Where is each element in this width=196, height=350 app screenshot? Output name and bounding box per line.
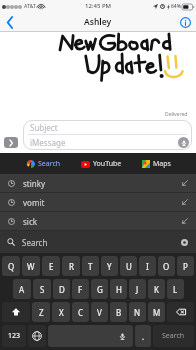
staticText: sick: [23, 216, 182, 227]
staticText: S: [40, 284, 45, 295]
staticText: Search: [22, 237, 180, 248]
staticText: vomit: [23, 197, 182, 208]
button[interactable]: Shift: [2, 302, 30, 322]
staticText: L: [173, 284, 178, 295]
button[interactable]: F: [72, 279, 89, 299]
button[interactable]: R: [62, 256, 80, 276]
button[interactable]: Search: [24, 156, 64, 172]
button[interactable]: J: [129, 279, 146, 299]
button[interactable]: Subject: [23, 120, 192, 150]
button[interactable]: L: [167, 279, 184, 299]
staticText: 123: [8, 331, 21, 341]
button[interactable]: G: [91, 279, 108, 299]
button[interactable]: U: [120, 256, 137, 276]
button[interactable]: Record audio: [178, 137, 189, 148]
staticText: A: [19, 284, 25, 295]
button[interactable]: Q: [2, 256, 20, 276]
staticText: C: [78, 307, 84, 318]
button[interactable]: T: [82, 256, 99, 276]
staticText: Y: [107, 261, 112, 272]
button[interactable]: D: [53, 279, 70, 299]
button[interactable]: Y: [101, 256, 118, 276]
staticText: T: [88, 261, 93, 272]
staticText: R: [69, 261, 74, 272]
button[interactable]: YouTube: [78, 156, 125, 172]
staticText: Search: [162, 331, 185, 341]
staticText: U: [126, 261, 132, 272]
staticText: AT&T: [24, 3, 36, 10]
button[interactable]: A: [13, 279, 31, 299]
button[interactable]: N: [129, 302, 146, 322]
button[interactable]: Apps: [4, 137, 18, 148]
staticText: V: [97, 307, 102, 318]
button[interactable]: .: [135, 325, 151, 347]
staticText: W: [27, 261, 35, 272]
staticText: O: [163, 261, 170, 272]
button[interactable]: Maps: [139, 156, 174, 172]
button[interactable]: Contact info: [178, 15, 192, 29]
staticText: X: [59, 307, 64, 318]
button[interactable]: Change keyboard language: [28, 325, 46, 347]
staticText: .: [142, 331, 145, 342]
staticText: J: [136, 284, 139, 295]
staticText: B: [116, 307, 122, 318]
staticText: YouTube: [93, 159, 122, 169]
staticText: 64%: [171, 3, 181, 10]
staticText: P: [183, 261, 188, 272]
button[interactable]: Search: [153, 325, 194, 347]
button[interactable]: S: [33, 279, 51, 299]
button[interactable]: X: [52, 302, 70, 322]
staticText: Z: [39, 307, 44, 318]
staticText: H: [116, 284, 122, 295]
staticText: K: [154, 284, 159, 295]
button[interactable]: 123: [2, 325, 26, 347]
button[interactable]: W: [22, 256, 40, 276]
button[interactable]: Clear search: [180, 238, 189, 247]
staticText: Maps: [153, 159, 171, 169]
staticText: D: [59, 284, 65, 295]
button[interactable]: B: [110, 302, 127, 322]
button[interactable]: M: [148, 302, 165, 322]
button[interactable]: H: [110, 279, 127, 299]
staticText: iMessage: [30, 137, 66, 148]
staticText: E: [49, 261, 54, 272]
staticText: 12:45 PM: [85, 2, 112, 10]
staticText: Search: [38, 159, 61, 169]
staticText: Q: [8, 261, 15, 272]
button[interactable]: V: [91, 302, 108, 322]
button[interactable]: sick: [0, 212, 196, 230]
button[interactable]: I: [139, 256, 156, 276]
staticText: Delivered: [165, 111, 188, 118]
button[interactable]: C: [72, 302, 89, 322]
button[interactable]: Search: [0, 231, 196, 253]
button[interactable]: E: [42, 256, 60, 276]
button[interactable]: O: [158, 256, 175, 276]
button[interactable]: P: [177, 256, 194, 276]
staticText: Subject: [30, 122, 58, 133]
button[interactable]: Backspace: [167, 302, 194, 322]
button[interactable]: Back: [2, 14, 18, 30]
button[interactable]: Z: [32, 302, 50, 322]
button[interactable]: vomit: [0, 193, 196, 211]
staticText: Ashley: [84, 16, 112, 28]
staticText: G: [97, 284, 103, 295]
staticText: I: [146, 261, 149, 272]
staticText: M: [153, 307, 161, 318]
staticText: N: [134, 307, 141, 318]
button[interactable]: K: [148, 279, 165, 299]
staticText: F: [78, 284, 83, 295]
staticText: stinky: [23, 178, 182, 189]
button[interactable]: Space: [48, 325, 133, 347]
button[interactable]: stinky: [0, 174, 196, 192]
